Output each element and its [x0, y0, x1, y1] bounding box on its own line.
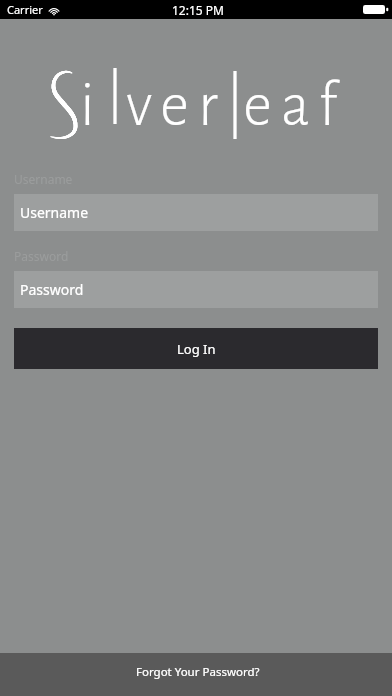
staticText: 12:15 PM	[172, 2, 224, 18]
staticText: Password	[14, 248, 69, 264]
staticText: Carrier	[7, 2, 43, 17]
staticText: i	[80, 74, 104, 138]
button[interactable]: Password	[14, 271, 378, 308]
other: Battery	[363, 5, 388, 14]
staticText: Password	[20, 280, 84, 299]
staticText: eaf	[243, 74, 346, 138]
staticText: Log In	[177, 340, 216, 358]
staticText: Username	[14, 171, 73, 187]
staticText: ver	[126, 74, 227, 138]
button[interactable]: Forgot Your Password?	[0, 653, 392, 696]
button[interactable]: Username	[14, 194, 378, 231]
staticText: Forgot Your Password?	[136, 664, 260, 680]
staticText: Username	[20, 203, 89, 222]
button[interactable]: Log In	[14, 328, 378, 369]
